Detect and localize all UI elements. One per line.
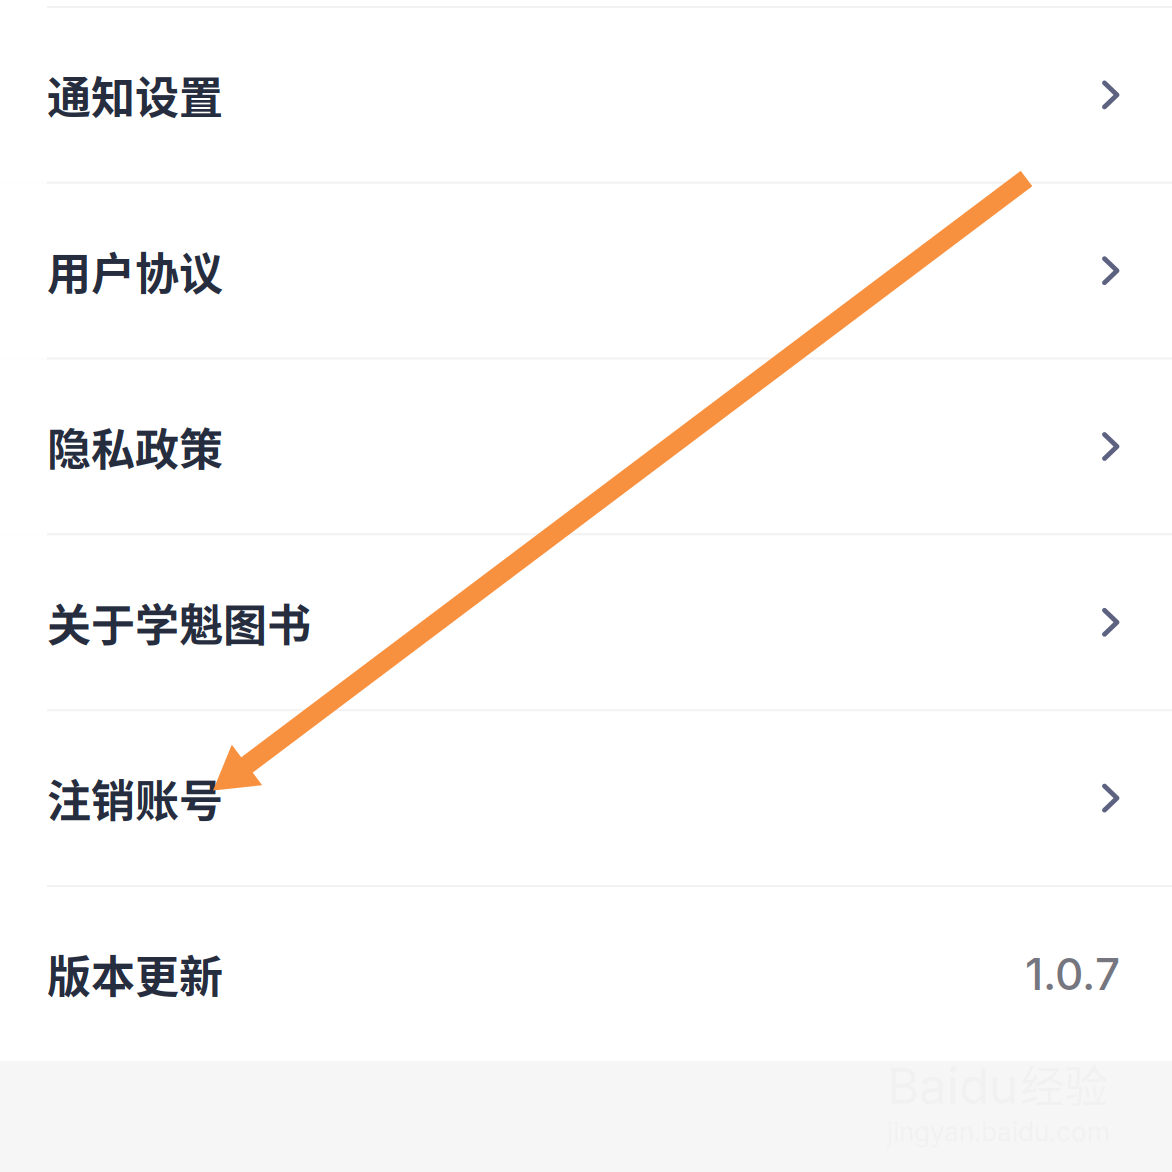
staticText: 版本更新 bbox=[47, 942, 223, 1006]
staticText: 用户协议 bbox=[47, 239, 223, 302]
staticText: 关于学魁图书 bbox=[47, 590, 311, 654]
staticText: 经验 bbox=[1020, 1052, 1108, 1116]
button[interactable]: 隐私政策 bbox=[0, 360, 1172, 533]
button[interactable]: 通知设置 bbox=[0, 8, 1172, 182]
staticText: 通知设置 bbox=[47, 63, 223, 127]
staticText: 隐私政策 bbox=[47, 415, 223, 478]
button[interactable]: 关于学魁图书 bbox=[0, 535, 1172, 709]
staticText: Baidu bbox=[887, 1056, 1018, 1116]
button[interactable]: 版本更新 bbox=[0, 887, 1172, 1061]
staticText: 注销账号 bbox=[47, 766, 223, 830]
staticText: 1.0.7 bbox=[1025, 947, 1120, 1000]
button[interactable]: 用户协议 bbox=[0, 184, 1172, 358]
button[interactable]: 注销账号 bbox=[0, 711, 1172, 885]
